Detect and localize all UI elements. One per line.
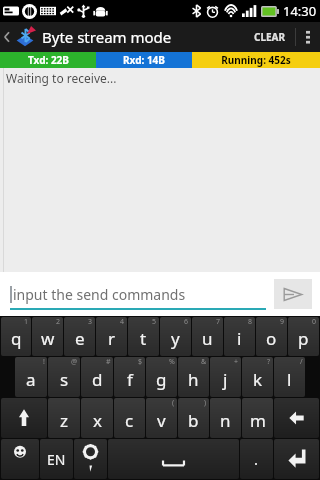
staticText: t [140, 327, 147, 350]
staticText: 7 [216, 317, 221, 327]
staticText: ? [267, 357, 271, 367]
button[interactable]: More options [296, 22, 320, 52]
button[interactable]: Navigate up [0, 22, 38, 52]
staticText: 3 [88, 317, 93, 327]
staticText: # [106, 357, 111, 367]
button[interactable]: 5 [128, 317, 159, 356]
button[interactable]: input the send commands [10, 272, 266, 316]
staticText: 8 [248, 317, 253, 327]
button[interactable]: Rxd: 14B [96, 52, 192, 68]
staticText: k [253, 368, 263, 391]
button[interactable]: Settings and comma [74, 439, 107, 479]
staticText: . [254, 449, 259, 469]
staticText: Txd: 22B [28, 53, 69, 67]
button[interactable]: 1 [1, 317, 31, 356]
button[interactable]: n [210, 398, 241, 438]
button[interactable]: EN [40, 439, 73, 479]
staticText: ! [43, 357, 45, 367]
staticText: o [266, 327, 277, 350]
button[interactable]: Send [274, 279, 312, 309]
staticText: y [171, 327, 180, 350]
button[interactable]: . [240, 439, 273, 479]
button[interactable]: 6 [160, 317, 191, 356]
staticText: r [108, 327, 116, 350]
button[interactable]: + [210, 357, 241, 397]
staticText: i [237, 327, 242, 350]
button[interactable]: 9 [256, 317, 287, 356]
staticText: g [156, 368, 167, 391]
button[interactable]: z [48, 398, 80, 438]
staticText: 5 [152, 317, 157, 327]
staticText: Rxd: 14B [123, 53, 165, 67]
staticText: q [11, 327, 22, 350]
staticText: ( [172, 398, 175, 408]
staticText: l [287, 368, 292, 391]
button[interactable]: CLEAR [245, 22, 295, 52]
button[interactable]: Space [108, 439, 239, 479]
staticText: 14:30 [283, 2, 317, 20]
staticText: e [75, 327, 85, 350]
staticText: % [169, 357, 175, 367]
other: Navigate up [3, 30, 11, 44]
staticText: input the send commands [13, 285, 186, 304]
staticText: m [250, 409, 266, 432]
button[interactable]: ! [15, 357, 47, 397]
staticText: a [26, 368, 36, 391]
button[interactable]: 8 [224, 317, 255, 356]
staticText: j [223, 368, 228, 391]
staticText: & [201, 357, 207, 367]
button[interactable]: 4 [96, 317, 127, 356]
staticText: Waiting to receive... [6, 70, 117, 86]
staticText: $ [138, 357, 143, 367]
staticText: x [93, 409, 102, 432]
staticText: w [41, 327, 55, 350]
staticText: p [298, 327, 309, 350]
staticText: f [127, 368, 133, 391]
staticText: h [188, 368, 199, 391]
staticText: c [125, 409, 134, 432]
staticText: 2 [56, 317, 61, 327]
button[interactable]: $ [114, 357, 145, 397]
button[interactable]: Symbols [1, 439, 39, 479]
staticText: s [60, 368, 69, 391]
staticText: EN [47, 450, 66, 469]
staticText: 1 [24, 317, 29, 327]
staticText: 0 [312, 317, 317, 327]
button[interactable]: c [114, 398, 145, 438]
button[interactable]: % [146, 357, 177, 397]
staticText: / [300, 357, 303, 367]
staticText: u [202, 327, 213, 350]
button[interactable]: m [242, 398, 273, 438]
button[interactable]: 3 [64, 317, 95, 356]
staticText: + [234, 357, 239, 367]
staticText: CLEAR [254, 30, 286, 44]
staticText: v [157, 409, 166, 432]
button[interactable]: @ [48, 357, 80, 397]
staticText: n [220, 409, 231, 432]
staticText: ) [204, 398, 207, 408]
button[interactable]: Txd: 22B [0, 52, 96, 68]
staticText: z [60, 409, 68, 432]
button[interactable]: Running: 452s [192, 52, 320, 68]
staticText: @ [71, 357, 78, 367]
button[interactable]: ? [242, 357, 273, 397]
button[interactable]: x [81, 398, 113, 438]
button[interactable]: 2 [32, 317, 63, 356]
staticText: d [92, 368, 103, 391]
staticText: Byte stream mode [42, 27, 172, 47]
button[interactable]: 0 [288, 317, 319, 356]
staticText: b [188, 409, 199, 432]
button[interactable]: Enter [274, 439, 319, 479]
button[interactable]: / [274, 357, 305, 397]
staticText: 9 [280, 317, 285, 327]
staticText: 6 [184, 317, 189, 327]
staticText: 4 [120, 317, 125, 327]
button[interactable]: Shift [1, 398, 47, 438]
button[interactable]: & [178, 357, 209, 397]
button[interactable]: ( [146, 398, 177, 438]
button[interactable]: 7 [192, 317, 223, 356]
button[interactable]: Backspace [274, 398, 319, 438]
button[interactable]: # [81, 357, 113, 397]
staticText: Running: 452s [221, 53, 291, 67]
button[interactable]: ) [178, 398, 209, 438]
